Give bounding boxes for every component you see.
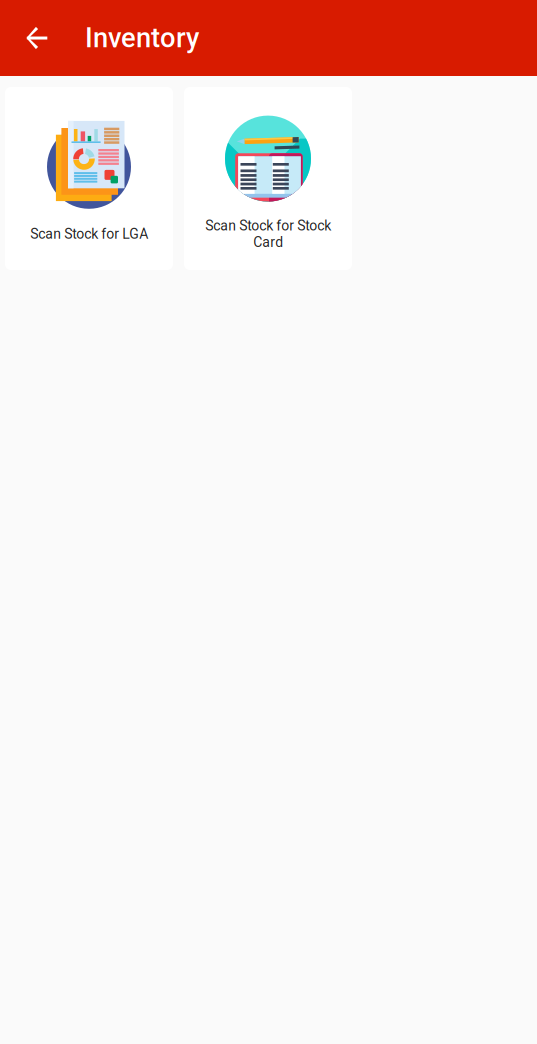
button[interactable]: Scan Stock for Stock Card xyxy=(184,87,352,270)
button[interactable]: Scan Stock for LGA xyxy=(5,87,173,270)
staticText: Scan Stock for Stock Card xyxy=(205,218,331,250)
staticText: Inventory xyxy=(85,22,199,54)
button[interactable]: Back xyxy=(13,14,61,62)
staticText: Scan Stock for LGA xyxy=(30,226,148,242)
